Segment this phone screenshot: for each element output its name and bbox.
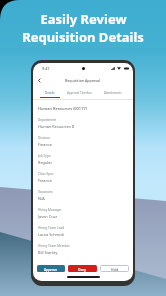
button[interactable]: Approve — [37, 265, 65, 272]
staticText: Deny — [78, 267, 87, 271]
button[interactable]: Back — [35, 76, 44, 85]
staticText: Class Spec — [38, 172, 54, 176]
staticText: Approval Timeline — [67, 91, 92, 95]
staticText: Human Resources (00177) — [38, 106, 87, 111]
staticText: Hiring Team Member — [38, 244, 70, 248]
staticText: Vacancies — [38, 190, 53, 194]
staticText: Hold — [111, 267, 119, 271]
staticText: Bill Stanley — [38, 250, 58, 255]
staticText: Easily Review — [40, 10, 127, 28]
button[interactable]: Attachments — [99, 87, 127, 98]
staticText: Details — [45, 91, 55, 95]
button[interactable]: Hold — [100, 265, 129, 272]
button[interactable]: Deny — [68, 265, 97, 272]
staticText: Hiring Manager — [38, 208, 62, 212]
staticText: Jason Cruz — [38, 214, 57, 219]
staticText: Attachments — [104, 91, 122, 95]
staticText: Requisition Details — [22, 28, 144, 46]
staticText: Hiring Team Lead — [38, 226, 65, 230]
staticText: 9:41 — [42, 66, 50, 71]
staticText: Finance — [38, 142, 52, 147]
staticText: Approve — [44, 267, 58, 271]
staticText: Regular — [38, 160, 53, 165]
staticText: Finance — [38, 178, 52, 183]
staticText: Requisition Approval — [65, 78, 101, 83]
staticText: Laura Schmidt — [38, 232, 64, 237]
button[interactable]: Details — [40, 87, 60, 98]
staticText: Human Resources II — [38, 124, 75, 129]
staticText: N/A — [38, 196, 45, 201]
button[interactable]: Approval Timeline — [60, 87, 99, 98]
staticText: Job Type — [38, 154, 51, 158]
staticText: Division — [38, 136, 50, 140]
staticText: Department — [38, 118, 57, 122]
